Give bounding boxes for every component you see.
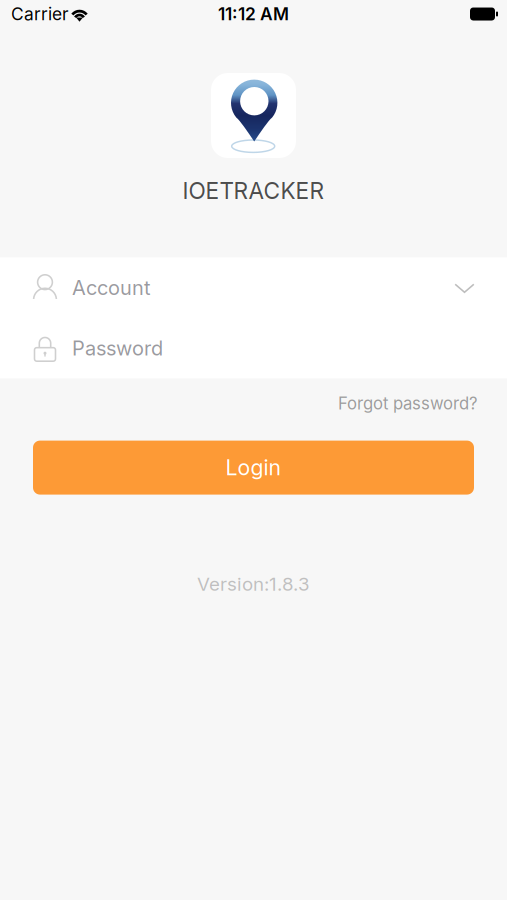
staticText: IOETRACKER — [182, 177, 324, 204]
staticText: Carrier — [11, 3, 69, 24]
staticText: Password — [72, 336, 163, 360]
staticText: Account — [72, 276, 151, 300]
staticText: 11:12 AM — [218, 3, 289, 24]
button[interactable]: Password — [0, 318, 507, 378]
staticText: Forgot password? — [338, 393, 478, 414]
button[interactable]: Account — [0, 257, 507, 318]
button[interactable]: Login — [33, 441, 474, 495]
staticText: Login — [225, 455, 281, 480]
button[interactable]: Forgot password? — [338, 378, 507, 418]
staticText: Version:1.8.3 — [197, 573, 310, 595]
